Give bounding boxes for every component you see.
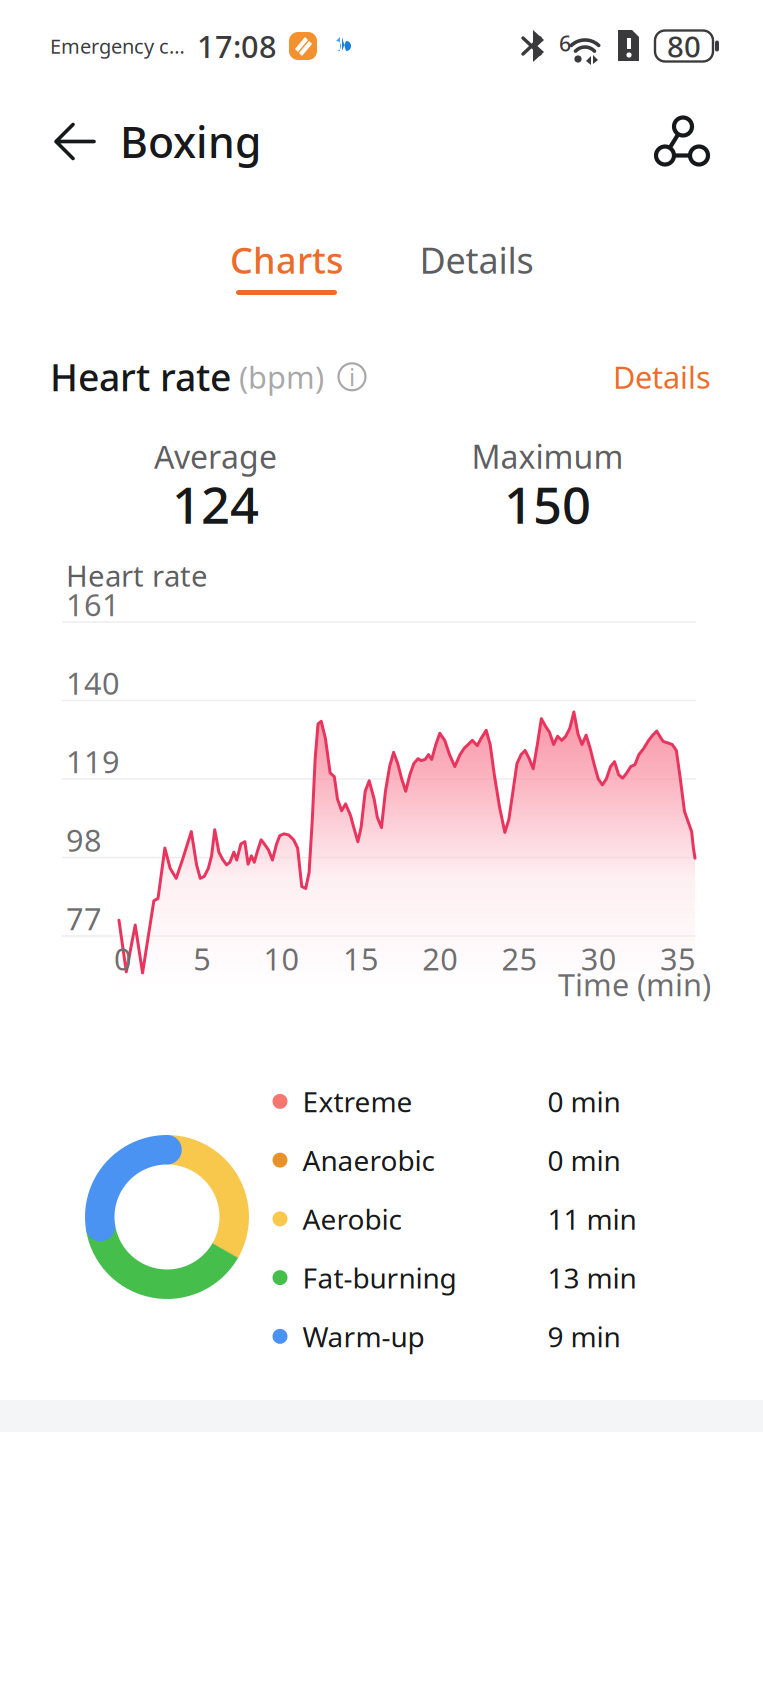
staticText: 124 <box>172 470 259 538</box>
staticText: 30 <box>581 938 617 979</box>
button[interactable]: Details <box>607 352 717 401</box>
staticText: 77 <box>66 898 102 939</box>
staticText: Maximum <box>471 435 623 477</box>
staticText: 0 <box>114 938 132 979</box>
staticText: 35 <box>660 938 696 979</box>
staticText: Fat-burning <box>302 1259 456 1296</box>
staticText: 98 <box>66 819 102 860</box>
staticText: Heart rate <box>66 556 208 595</box>
staticText: 150 <box>504 470 591 538</box>
staticText: Boxing <box>120 113 261 170</box>
staticText: 9 min <box>547 1318 620 1355</box>
staticText: 80 <box>667 26 701 65</box>
button[interactable]: Back <box>48 110 102 172</box>
staticText: Details <box>419 236 533 284</box>
staticText: Details <box>613 356 711 397</box>
staticText: i <box>349 361 355 393</box>
staticText: Warm-up <box>302 1318 424 1355</box>
button[interactable]: Details <box>381 191 571 342</box>
staticText: 10 <box>264 938 300 979</box>
staticText: 140 <box>66 662 120 703</box>
staticText: (bpm) <box>231 356 324 397</box>
button[interactable]: Share <box>645 106 719 176</box>
staticText: 0 min <box>547 1141 620 1179</box>
staticText: Heart rate <box>50 352 231 402</box>
staticText: Charts <box>230 236 343 284</box>
staticText: Aerobic <box>302 1200 401 1237</box>
staticText: Extreme <box>302 1083 412 1120</box>
staticText: 13 min <box>547 1259 636 1296</box>
staticText: 119 <box>66 741 120 782</box>
staticText: 6 <box>559 29 571 57</box>
staticText: Emergency c… <box>50 33 185 59</box>
staticText: 11 min <box>547 1200 636 1237</box>
staticText: 161 <box>66 584 120 625</box>
staticText: Time (min) <box>558 964 711 1005</box>
staticText: 5 <box>193 938 211 979</box>
staticText: Anaerobic <box>302 1141 434 1179</box>
staticText: 15 <box>343 938 379 979</box>
staticText: 0 min <box>547 1083 620 1120</box>
staticText: Average <box>154 435 277 477</box>
button[interactable]: Charts <box>191 191 381 342</box>
staticText: 17:08 <box>197 26 277 66</box>
staticText: 25 <box>501 938 537 979</box>
staticText: 20 <box>422 938 458 979</box>
